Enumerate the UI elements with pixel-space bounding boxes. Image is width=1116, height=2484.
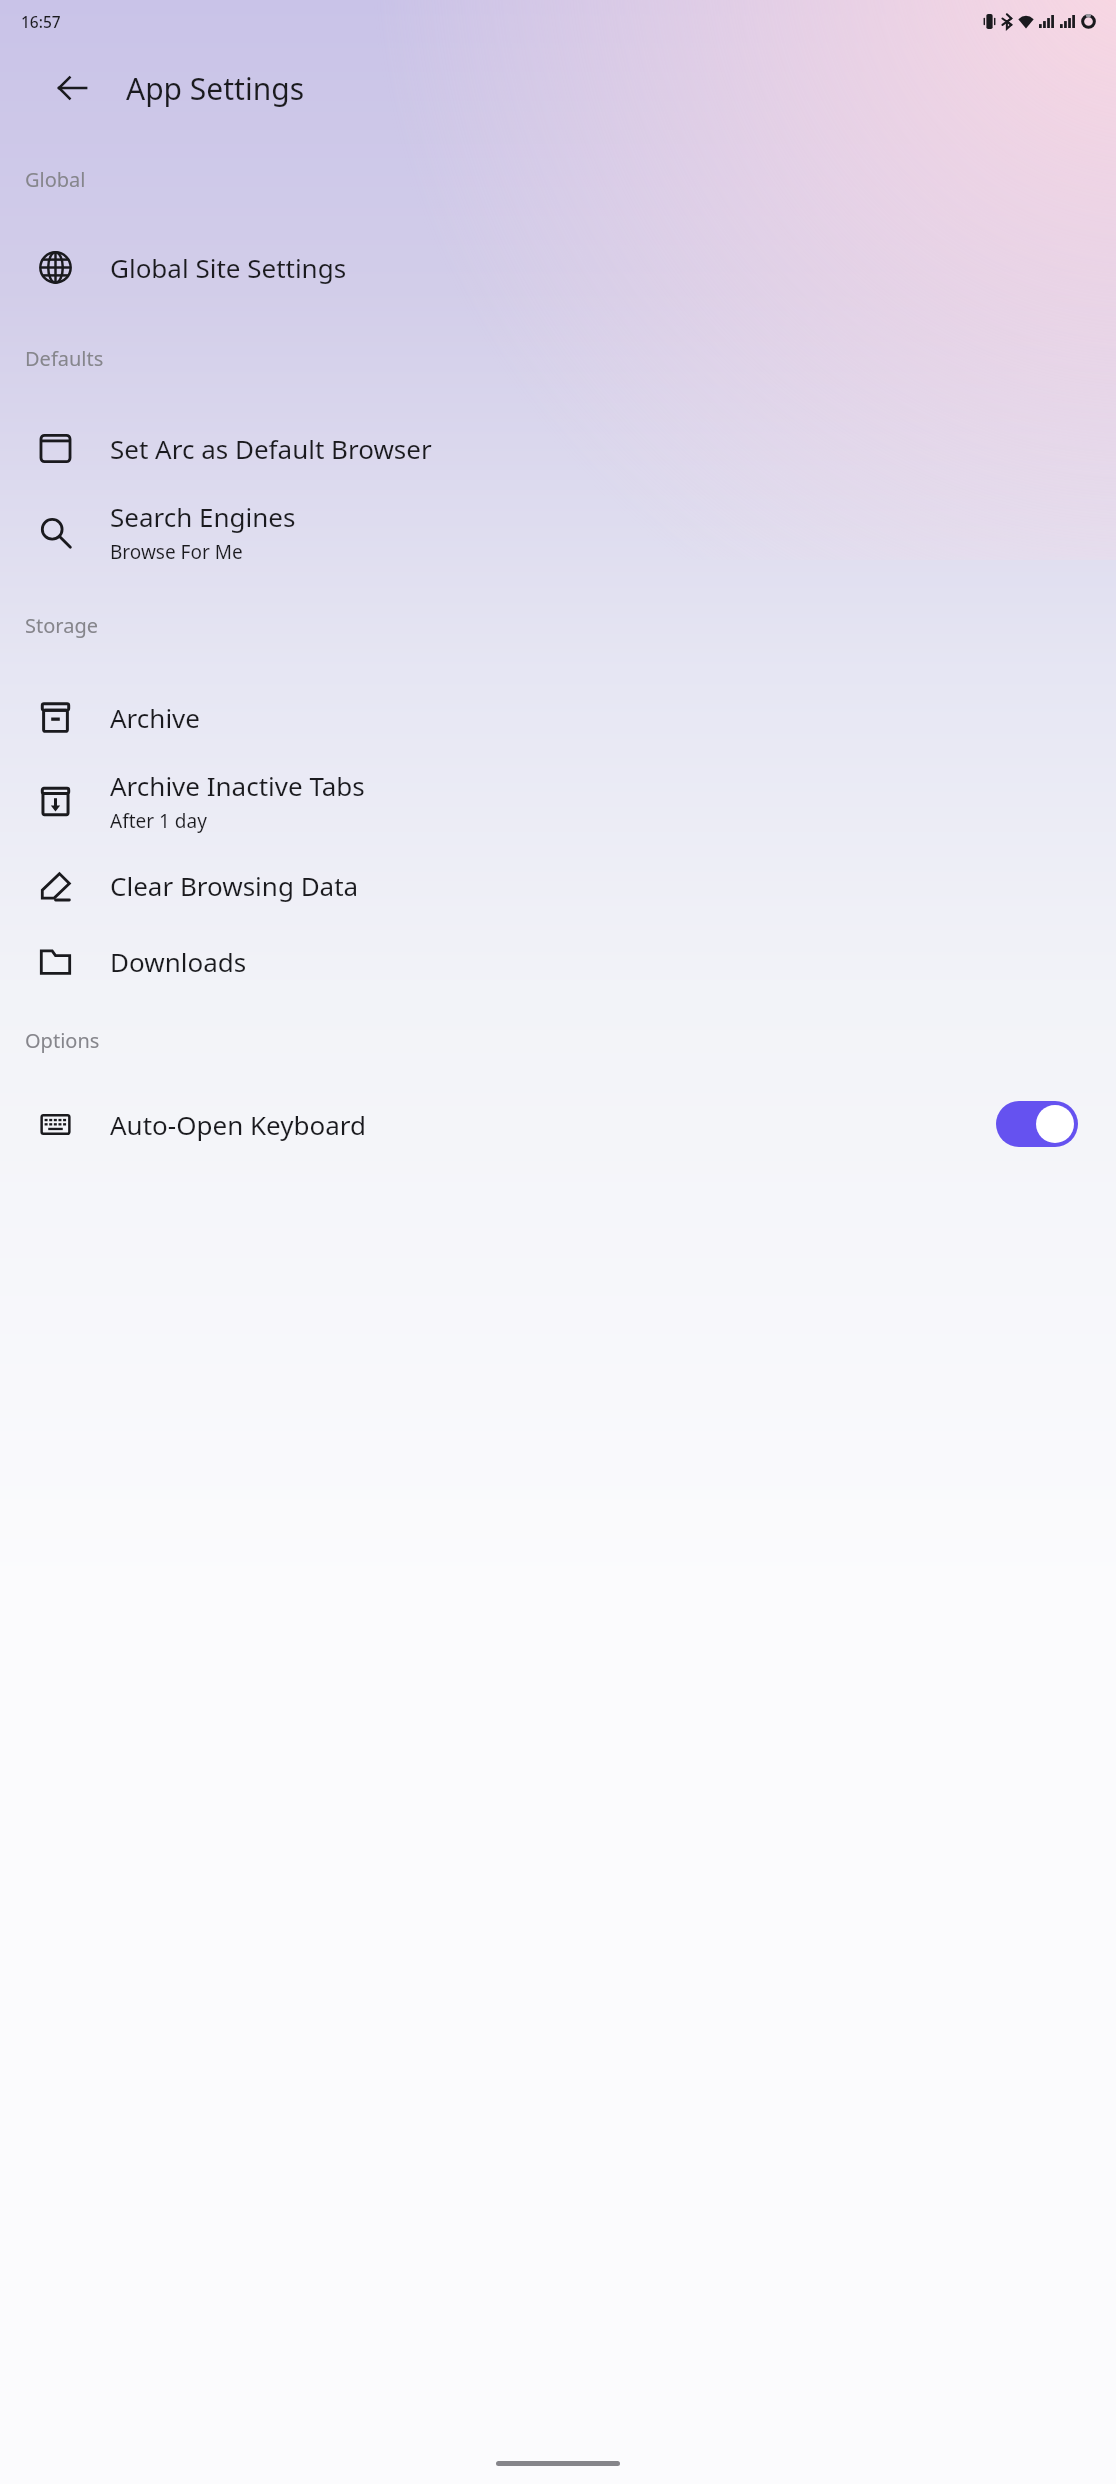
- staticText: Global Site Settings: [110, 250, 347, 285]
- button[interactable]: Global Site Settings: [0, 229, 1116, 305]
- staticText: Downloads: [110, 944, 247, 979]
- button[interactable]: Search Engines: [0, 486, 1116, 578]
- staticText: Defaults: [25, 345, 104, 372]
- button[interactable]: Auto-Open Keyboard: [0, 1084, 1116, 1164]
- staticText: Options: [25, 1027, 100, 1054]
- button[interactable]: Archive: [0, 679, 1116, 755]
- button[interactable]: Clear Browsing Data: [0, 847, 1116, 923]
- staticText: App Settings: [126, 68, 305, 109]
- staticText: Archive: [110, 700, 200, 735]
- button[interactable]: Set Arc as Default Browser: [0, 410, 1116, 486]
- staticText: Set Arc as Default Browser: [110, 431, 432, 466]
- staticText: Auto-Open Keyboard: [110, 1107, 996, 1142]
- staticText: Archive Inactive Tabs: [110, 768, 365, 803]
- staticText: 16:57: [21, 11, 61, 32]
- button[interactable]: Auto-Open Keyboard toggle: [996, 1101, 1078, 1147]
- button[interactable]: Archive Inactive Tabs: [0, 755, 1116, 847]
- staticText: Search Engines: [110, 499, 296, 534]
- staticText: Browse For Me: [110, 539, 243, 565]
- staticText: Storage: [25, 612, 98, 639]
- button[interactable]: Back: [44, 60, 100, 116]
- button[interactable]: Downloads: [0, 923, 1116, 999]
- staticText: Clear Browsing Data: [110, 868, 359, 903]
- staticText: After 1 day: [110, 808, 207, 834]
- staticText: Global: [25, 166, 86, 193]
